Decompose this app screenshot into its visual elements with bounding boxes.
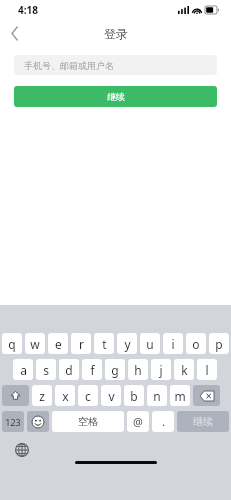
button[interactable]: 继续	[14, 86, 217, 107]
staticText: v	[108, 388, 115, 404]
staticText: c	[85, 388, 91, 404]
button[interactable]: i	[163, 333, 183, 354]
staticText: q	[8, 336, 16, 352]
button[interactable]: c	[78, 385, 98, 406]
button[interactable]: k	[174, 359, 194, 380]
button[interactable]: @	[127, 411, 149, 432]
button[interactable]: o	[186, 333, 206, 354]
button[interactable]: j	[151, 359, 171, 380]
button[interactable]: x	[55, 385, 75, 406]
button[interactable]: a	[13, 359, 33, 380]
button[interactable]: v	[101, 385, 121, 406]
button[interactable]: s	[36, 359, 56, 380]
staticText: k	[181, 362, 188, 378]
staticText: r	[79, 336, 84, 352]
button[interactable]: f	[82, 359, 102, 380]
staticText: 123	[5, 416, 21, 428]
button[interactable]: 空格	[52, 411, 124, 432]
button[interactable]: z	[32, 385, 52, 406]
button[interactable]: d	[59, 359, 79, 380]
button[interactable]: .	[152, 411, 174, 432]
staticText: l	[205, 362, 209, 378]
staticText: 登录	[104, 26, 128, 41]
staticText: 继续	[193, 415, 213, 428]
staticText: n	[153, 388, 161, 404]
staticText: z	[39, 388, 45, 404]
staticText: s	[43, 362, 49, 378]
staticText: 空格	[78, 415, 98, 428]
staticText: w	[30, 336, 40, 352]
button[interactable]: Key	[193, 385, 220, 406]
staticText: y	[124, 336, 131, 352]
button[interactable]: m	[170, 385, 190, 406]
button[interactable]: h	[128, 359, 148, 380]
staticText: x	[62, 388, 69, 404]
staticText: @	[133, 414, 143, 429]
button[interactable]: Key	[27, 411, 49, 432]
button[interactable]: 继续	[177, 411, 229, 432]
button[interactable]: Change keyboard language	[14, 442, 30, 458]
staticText: u	[146, 336, 154, 352]
staticText: d	[65, 362, 73, 378]
staticText: o	[192, 336, 200, 352]
button[interactable]: t	[94, 333, 114, 354]
button[interactable]: l	[197, 359, 217, 380]
button[interactable]: w	[25, 333, 45, 354]
staticText: j	[159, 362, 163, 378]
staticText: b	[130, 388, 138, 404]
staticText: i	[171, 336, 175, 352]
button[interactable]: n	[147, 385, 167, 406]
staticText: f	[90, 362, 95, 378]
staticText: h	[134, 362, 142, 378]
button[interactable]: 手机号、邮箱或用户名	[14, 55, 217, 75]
staticText: t	[102, 336, 107, 352]
button[interactable]: y	[117, 333, 137, 354]
button[interactable]: r	[71, 333, 91, 354]
staticText: 4:18	[18, 3, 38, 17]
staticText: 继续	[107, 91, 125, 102]
staticText: g	[111, 362, 119, 378]
button[interactable]: Key	[2, 385, 29, 406]
staticText: m	[174, 388, 186, 404]
button[interactable]: Back	[0, 20, 30, 47]
button[interactable]: q	[2, 333, 22, 354]
staticText: p	[215, 336, 223, 352]
staticText: 手机号、邮箱或用户名	[24, 60, 114, 71]
staticText: a	[20, 362, 27, 378]
button[interactable]: e	[48, 333, 68, 354]
button[interactable]: b	[124, 385, 144, 406]
button[interactable]: g	[105, 359, 125, 380]
button[interactable]: 123	[2, 411, 24, 432]
staticText: e	[55, 336, 62, 352]
button[interactable]: p	[209, 333, 229, 354]
button[interactable]: u	[140, 333, 160, 354]
staticText: .	[162, 414, 165, 429]
